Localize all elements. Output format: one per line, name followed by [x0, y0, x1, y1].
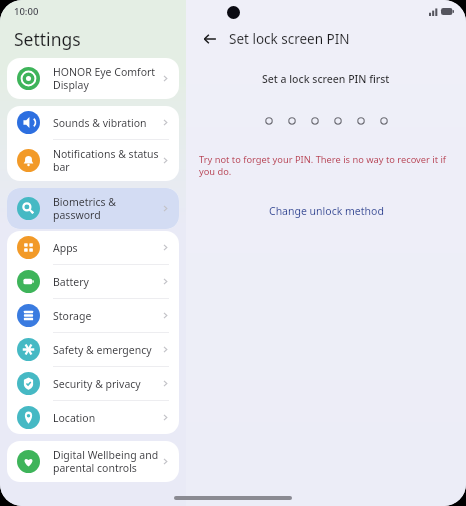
staticText: Biometrics & password — [53, 195, 160, 222]
staticText: Set lock screen PIN — [229, 30, 350, 48]
button[interactable]: Change unlock method — [261, 200, 392, 222]
staticText: Battery — [53, 275, 160, 289]
button[interactable]: HONOR Eye Comfort Display — [7, 58, 179, 99]
button[interactable]: Storage — [7, 299, 179, 332]
staticText: Apps — [53, 241, 160, 255]
button[interactable]: Apps — [7, 231, 179, 264]
button[interactable]: Biometrics & password — [7, 188, 179, 229]
staticText: Storage — [53, 309, 160, 323]
button[interactable]: Digital Wellbeing and parental controls — [7, 441, 179, 482]
button[interactable]: Location — [7, 401, 179, 434]
staticText: Safety & emergency — [53, 343, 160, 357]
button[interactable]: Sounds & vibration — [7, 106, 179, 139]
staticText: Set a lock screen PIN first — [262, 72, 390, 86]
button[interactable]: Back — [200, 29, 220, 49]
staticText: Change unlock method — [269, 204, 384, 218]
staticText: Security & privacy — [53, 377, 160, 391]
staticText: Location — [53, 411, 160, 425]
button[interactable]: Safety & emergency — [7, 333, 179, 366]
staticText: Settings — [14, 27, 81, 51]
staticText: Sounds & vibration — [53, 116, 160, 130]
button[interactable]: Security & privacy — [7, 367, 179, 400]
button[interactable]: Notifications & status bar — [7, 140, 179, 181]
staticText: Notifications & status bar — [53, 147, 160, 174]
staticText: Digital Wellbeing and parental controls — [53, 448, 160, 475]
staticText: HONOR Eye Comfort Display — [53, 65, 160, 92]
staticText: Try not to forget your PIN. There is no … — [199, 153, 453, 178]
staticText: 10:00 — [14, 5, 39, 18]
button[interactable]: Battery — [7, 265, 179, 298]
